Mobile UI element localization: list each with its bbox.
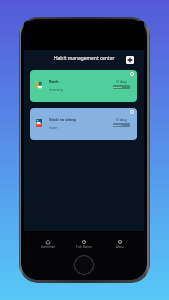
staticText: Good Habit [41,245,55,249]
staticText: stick to it together [113,86,130,89]
staticText: 0 day [113,117,130,123]
button[interactable]: Bath [30,70,137,102]
staticText: stick to it together [113,124,130,127]
button[interactable]: Good Habit [30,231,66,249]
staticText: 0 day [113,79,130,85]
button[interactable]: Habit options [130,110,134,114]
staticText: Habit management center [54,55,115,62]
button[interactable]: Add habit [126,56,134,64]
button[interactable]: Push Notices [66,231,102,249]
button[interactable]: Stick to sleep [30,108,137,140]
staticText: Push Notices [76,245,92,249]
staticText: Bath [49,79,59,85]
staticText: Stick to sleep [49,117,77,123]
button[interactable]: Habit options [130,72,134,76]
staticText: About [116,245,124,249]
staticText: noon [49,125,58,130]
button[interactable]: About [102,231,138,249]
staticText: morning [49,87,63,92]
